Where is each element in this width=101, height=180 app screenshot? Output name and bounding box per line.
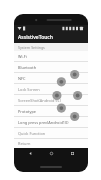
button[interactable]: NFC bbox=[14, 73, 88, 83]
button[interactable]: Lock Screen bbox=[14, 84, 88, 94]
button[interactable]: Home bbox=[46, 148, 56, 158]
staticText: Bluetooth bbox=[18, 65, 37, 70]
staticText: Return bbox=[18, 141, 31, 146]
staticText: Wi-Fi bbox=[18, 54, 27, 59]
staticText: ScreenShot(Android 9+) bbox=[18, 98, 61, 103]
button[interactable]: Return bbox=[14, 139, 88, 148]
button[interactable]: Prototype bbox=[14, 106, 88, 116]
button[interactable]: ScreenShot(Android 9+) bbox=[14, 95, 88, 105]
button[interactable]: Wi-Fi bbox=[14, 51, 88, 61]
staticText: System Settings bbox=[18, 45, 45, 50]
button[interactable]: AssistiveTouch bbox=[14, 32, 88, 43]
staticText: NFC bbox=[18, 76, 26, 81]
other: Assistive touch buttons bbox=[14, 43, 88, 148]
button[interactable]: Long press prev(Android10) bbox=[14, 117, 88, 127]
button[interactable]: Bluetooth bbox=[14, 62, 88, 72]
button[interactable]: Quick Function bbox=[14, 128, 88, 138]
staticText: Lock Screen bbox=[18, 87, 40, 92]
staticText: Prototype bbox=[18, 109, 36, 114]
staticText: Long press prev(Android10) bbox=[18, 120, 69, 125]
staticText: AssistiveTouch bbox=[18, 34, 53, 41]
button[interactable]: Recents bbox=[67, 148, 77, 158]
staticText: Quick Function bbox=[18, 131, 46, 136]
button[interactable]: Back bbox=[25, 148, 35, 158]
